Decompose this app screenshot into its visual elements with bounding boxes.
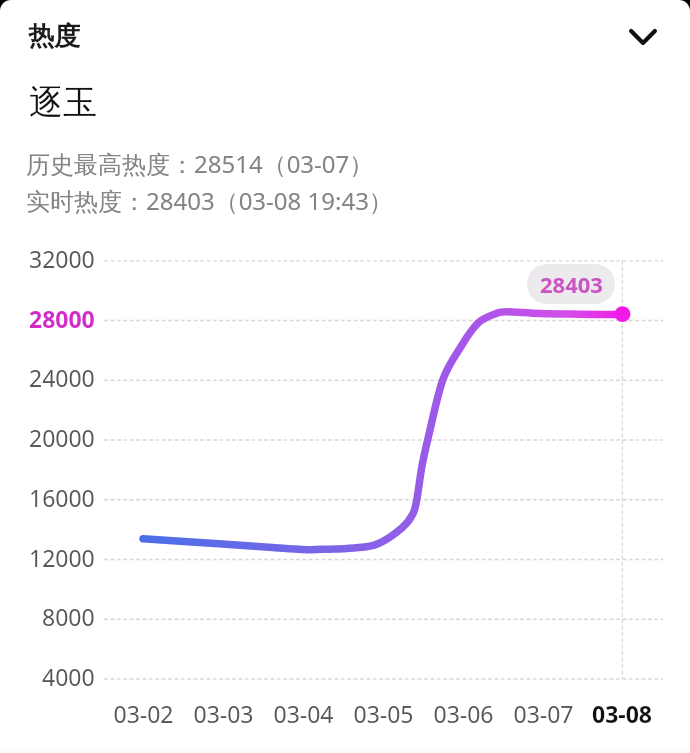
button[interactable]: Collapse [613, 7, 673, 67]
staticText: 逐玉 [29, 81, 97, 124]
staticText: 03-08 [592, 698, 652, 729]
staticText: 28403 [540, 269, 603, 299]
staticText: 20000 [29, 422, 95, 452]
button[interactable]: 28403 [527, 264, 615, 304]
staticText: 03-05 [353, 698, 414, 729]
staticText: 24000 [29, 362, 95, 392]
button[interactable]: 03-04 [258, 697, 348, 729]
button[interactable]: 03-07 [498, 697, 588, 729]
staticText: 03-04 [273, 698, 334, 729]
button[interactable]: 03-03 [178, 697, 268, 729]
staticText: 8000 [42, 601, 95, 631]
staticText: 实时热度：28403（03-08 19:43） [26, 184, 393, 217]
staticText: 28000 [29, 303, 95, 333]
staticText: 热度 [28, 20, 80, 53]
staticText: 12000 [29, 542, 95, 572]
button[interactable]: 热度 [0, 0, 690, 72]
button[interactable]: 03-05 [338, 697, 428, 729]
staticText: 03-06 [433, 698, 494, 729]
button[interactable]: 03-02 [98, 697, 188, 729]
staticText: 03-03 [193, 698, 254, 729]
button[interactable]: 03-08 [577, 697, 667, 729]
staticText: 历史最高热度：28514（03-07） [26, 147, 374, 180]
button[interactable]: 03-06 [418, 697, 508, 729]
staticText: 32000 [29, 243, 95, 273]
staticText: 03-02 [113, 698, 174, 729]
staticText: 4000 [42, 661, 95, 691]
staticText: 03-07 [513, 698, 574, 729]
staticText: 16000 [29, 482, 95, 512]
